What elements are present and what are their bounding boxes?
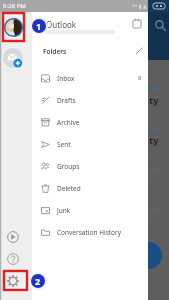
staticText: 1 [36,20,42,32]
staticText: Junk [57,206,71,215]
button[interactable]: Settings [4,272,22,290]
staticText: Sent [57,140,71,149]
button[interactable]: Sent [32,133,148,155]
button[interactable]: Groups [32,155,148,177]
staticText: Groups [57,162,80,171]
staticText: Archive [57,118,80,127]
staticText: 8 [138,74,142,82]
staticText: Drafts [57,96,76,105]
staticText: 2 [35,275,41,287]
button[interactable]: Inbox [32,67,148,89]
staticText: ty [149,134,159,147]
staticText: 9:26 PM [3,2,26,10]
button[interactable]: Help [4,250,22,268]
button[interactable]: Media [4,228,22,246]
button[interactable]: Calendar [128,15,146,33]
button[interactable]: Drafts [32,89,148,111]
button[interactable]: Account [3,17,23,37]
button[interactable]: Conversation History [32,221,148,243]
button[interactable]: Search [152,17,168,33]
staticText: nday [149,124,164,133]
staticText: Deleted [57,184,81,193]
button[interactable]: Compose [135,242,162,269]
button[interactable]: Deleted [32,177,148,199]
staticText: Conversation History [57,228,122,237]
staticText: Folders [43,47,67,56]
staticText: Inbox [57,74,75,83]
staticText: rday [149,245,161,252]
button[interactable]: Junk [32,199,148,221]
button[interactable]: Archive [32,111,148,133]
staticText: nday [149,84,164,93]
staticText: Outlook [46,19,77,30]
button[interactable]: Edit folders [131,43,147,59]
staticText: ••• ▮ ▲ [132,3,147,10]
button[interactable]: Add account [3,48,23,68]
staticText: ty [149,94,159,107]
